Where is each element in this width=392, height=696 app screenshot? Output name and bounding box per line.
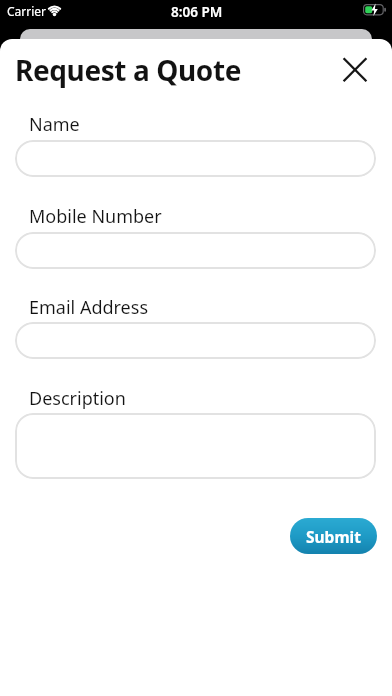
button[interactable] <box>15 413 376 479</box>
staticText: Carrier <box>7 3 47 19</box>
button[interactable]: Submit <box>290 518 377 554</box>
staticText: Mobile Number <box>29 204 162 229</box>
staticText: Email Address <box>29 295 149 320</box>
staticText: Description <box>29 386 126 411</box>
button[interactable] <box>15 232 376 269</box>
staticText: Request a Quote <box>15 51 241 89</box>
staticText: Name <box>29 112 80 137</box>
button[interactable] <box>15 322 376 359</box>
button[interactable] <box>15 140 376 177</box>
button[interactable] <box>332 47 378 93</box>
staticText: Submit <box>306 526 361 547</box>
staticText: 8:06 PM <box>171 3 223 21</box>
